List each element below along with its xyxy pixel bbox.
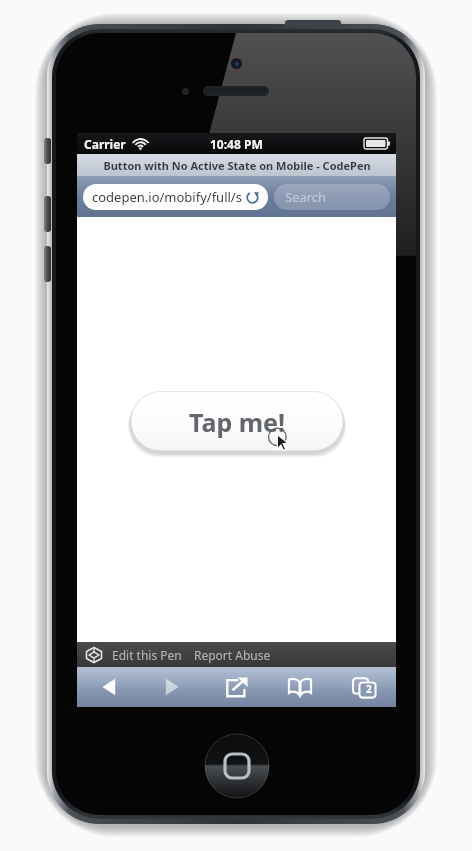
button[interactable]: Tabs, 2 open (332, 667, 396, 707)
button[interactable]: Back (77, 667, 140, 707)
button[interactable]: codepen.io/mobify/full/s (83, 184, 268, 210)
staticText: 2 (366, 682, 372, 696)
button[interactable]: Forward (140, 667, 204, 707)
staticText: Search (285, 188, 327, 206)
staticText: Carrier (84, 136, 126, 152)
other: CodePen (86, 647, 102, 663)
button[interactable]: Home (204, 733, 270, 799)
staticText: Button with No Active State on Mobile - … (103, 158, 371, 173)
staticText: 10:48 PM (210, 136, 263, 152)
staticText: Tap me! (189, 405, 286, 439)
staticText: codepen.io/mobify/full/s (92, 188, 242, 206)
other: Reload (246, 191, 259, 204)
button[interactable]: Bookmarks (268, 667, 332, 707)
button[interactable]: Report Abuse (194, 647, 271, 663)
button[interactable]: Tap me! (130, 391, 344, 453)
button[interactable]: Edit this Pen (112, 647, 182, 663)
button[interactable]: Share (204, 667, 268, 707)
staticText: Edit this Pen (112, 647, 182, 663)
button[interactable]: Search (274, 184, 390, 210)
staticText: Report Abuse (194, 647, 271, 663)
